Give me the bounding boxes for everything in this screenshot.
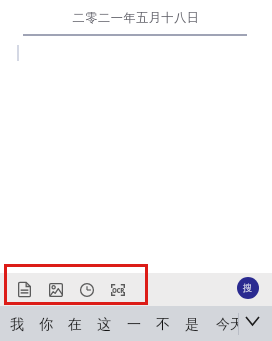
button[interactable]: Scan text [102, 273, 133, 306]
button[interactable]: Image [40, 273, 71, 306]
staticText: 不 [156, 316, 170, 334]
staticText: 一 [127, 316, 141, 334]
button[interactable]: Document [9, 273, 40, 306]
button[interactable]: 我 [2, 307, 31, 341]
staticText: 二零二一年五月十八日 [0, 10, 272, 25]
button[interactable]: 是 [177, 307, 206, 341]
staticText: 今天 [216, 316, 239, 334]
staticText: 搜 [243, 282, 253, 294]
staticText: OCR [112, 286, 125, 294]
staticText: 这 [97, 316, 111, 334]
staticText: 你 [39, 316, 53, 334]
button[interactable]: Recent [71, 273, 102, 306]
button[interactable]: Note body [0, 0, 272, 273]
button[interactable]: More candidates [239, 306, 272, 341]
button[interactable]: 不 [148, 307, 177, 341]
staticText: 是 [185, 316, 199, 334]
staticText: 我 [10, 316, 24, 334]
staticText: 在 [68, 316, 82, 334]
button[interactable]: 这 [89, 307, 118, 341]
button[interactable]: Search [237, 277, 259, 299]
button[interactable]: 你 [31, 307, 60, 341]
button[interactable]: 今天 [207, 307, 239, 341]
button[interactable]: 在 [60, 307, 89, 341]
button[interactable]: 一 [119, 307, 148, 341]
